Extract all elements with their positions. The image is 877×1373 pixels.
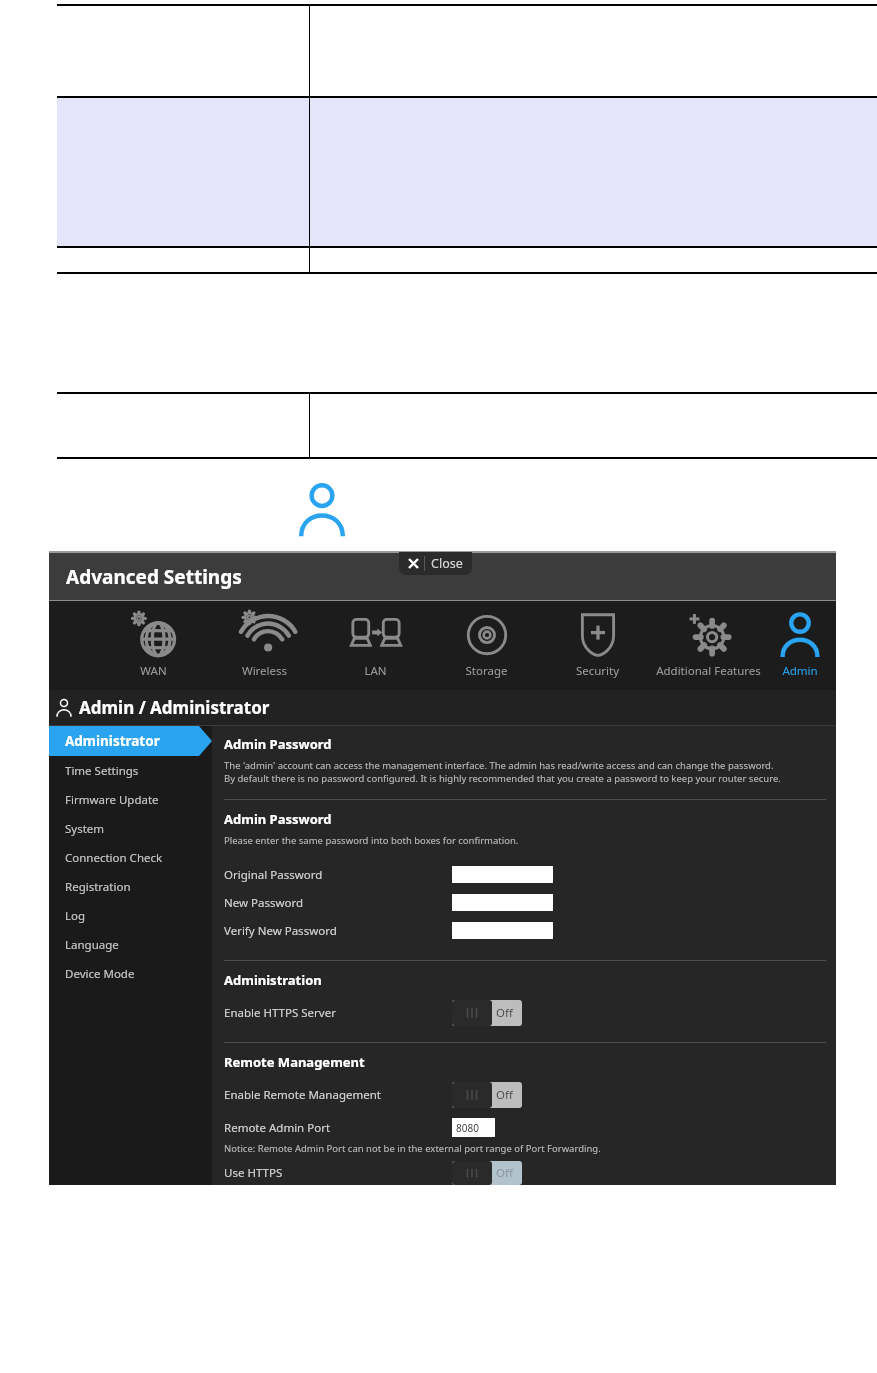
- staticText: Off: [496, 1005, 513, 1021]
- staticText: Administration: [224, 971, 322, 989]
- staticText: Notice: Remote Admin Port can not be in …: [224, 1142, 601, 1155]
- staticText: Original Password: [224, 867, 452, 883]
- staticText: Storage: [431, 663, 542, 679]
- staticText: Administrator: [65, 732, 160, 750]
- staticText: Admin Password: [224, 810, 332, 828]
- button[interactable]: Toggle off: [452, 1082, 522, 1108]
- button[interactable]: Admin: [764, 601, 836, 690]
- staticText: Language: [65, 937, 119, 953]
- staticText: Device Mode: [65, 966, 135, 982]
- staticText: Use HTTPS: [224, 1165, 452, 1181]
- staticText: Admin / Administrator: [79, 696, 270, 719]
- staticText: Admin: [764, 663, 836, 679]
- staticText: Additional Features: [653, 663, 764, 679]
- staticText: Connection Check: [65, 850, 163, 866]
- button[interactable]: Administrator: [49, 726, 212, 756]
- button[interactable]: Device Mode: [49, 959, 212, 988]
- button[interactable]: Toggle off: [452, 1000, 522, 1026]
- button[interactable]: Close: [399, 552, 472, 575]
- staticText: Off: [496, 1165, 513, 1181]
- staticText: The 'admin' account can access the manag…: [224, 759, 774, 772]
- button[interactable]: 8080: [452, 1118, 495, 1137]
- staticText: Log: [65, 908, 86, 924]
- button[interactable]: Registration: [49, 872, 212, 901]
- staticText: By default there is no password configur…: [224, 772, 781, 785]
- staticText: New Password: [224, 895, 452, 911]
- staticText: Wireless: [209, 663, 320, 679]
- button[interactable]: WAN: [98, 601, 209, 690]
- staticText: 8080: [456, 1121, 479, 1135]
- staticText: Verify New Password: [224, 923, 452, 939]
- button[interactable]: Wireless: [209, 601, 320, 690]
- button[interactable]: Connection Check: [49, 843, 212, 872]
- staticText: LAN: [320, 663, 431, 679]
- button[interactable]: Log: [49, 901, 212, 930]
- staticText: Close: [431, 555, 463, 572]
- button[interactable]: Additional Features: [653, 601, 764, 690]
- button[interactable]: Firmware Update: [49, 785, 212, 814]
- staticText: Off: [496, 1087, 513, 1103]
- button[interactable]: Language: [49, 930, 212, 959]
- staticText: Remote Management: [224, 1053, 365, 1071]
- button[interactable]: System: [49, 814, 212, 843]
- button[interactable]: LAN: [320, 601, 431, 690]
- staticText: Security: [542, 663, 653, 679]
- staticText: System: [65, 821, 105, 837]
- button[interactable]: Storage: [431, 601, 542, 690]
- staticText: Advanced Settings: [66, 564, 242, 590]
- staticText: Enable Remote Management: [224, 1087, 452, 1103]
- staticText: Registration: [65, 879, 131, 895]
- staticText: Firmware Update: [65, 792, 159, 808]
- button[interactable]: Time Settings: [49, 756, 212, 785]
- staticText: Remote Admin Port: [224, 1120, 452, 1136]
- staticText: Please enter the same password into both…: [224, 834, 519, 847]
- button[interactable]: Toggle off: [452, 1161, 522, 1185]
- staticText: Admin Password: [224, 735, 332, 753]
- staticText: Time Settings: [65, 763, 139, 779]
- staticText: WAN: [98, 663, 209, 679]
- staticText: Enable HTTPS Server: [224, 1005, 452, 1021]
- button[interactable]: Security: [542, 601, 653, 690]
